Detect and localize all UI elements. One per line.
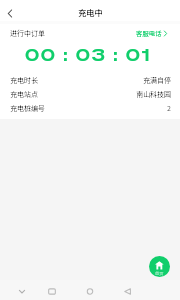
staticText: 充满自停: [143, 75, 171, 85]
button[interactable]: 客服电话: [136, 29, 167, 38]
button[interactable]: Back: [3, 6, 17, 20]
button[interactable]: Home: [149, 256, 170, 277]
button[interactable]: 充电桩编号: [0, 101, 180, 115]
staticText: 充电桩编号: [10, 103, 45, 113]
button[interactable]: Recent apps: [39, 280, 65, 300]
button[interactable]: Home screen: [77, 280, 103, 300]
staticText: 进行中订单: [10, 28, 45, 38]
staticText: 客服电话: [136, 29, 162, 38]
button[interactable]: 充电站点: [0, 87, 180, 101]
staticText: 南山科技园: [136, 89, 171, 99]
button[interactable]: Hide keyboard: [9, 280, 35, 300]
staticText: 2: [167, 103, 171, 113]
staticText: 00 : 03 : 01: [25, 46, 152, 65]
staticText: 首页: [155, 270, 164, 276]
staticText: 充电时长: [10, 75, 38, 85]
button[interactable]: Back: [115, 280, 141, 300]
button[interactable]: 充电时长: [0, 73, 180, 87]
staticText: 充电中: [78, 6, 103, 18]
staticText: 充电站点: [10, 89, 38, 99]
